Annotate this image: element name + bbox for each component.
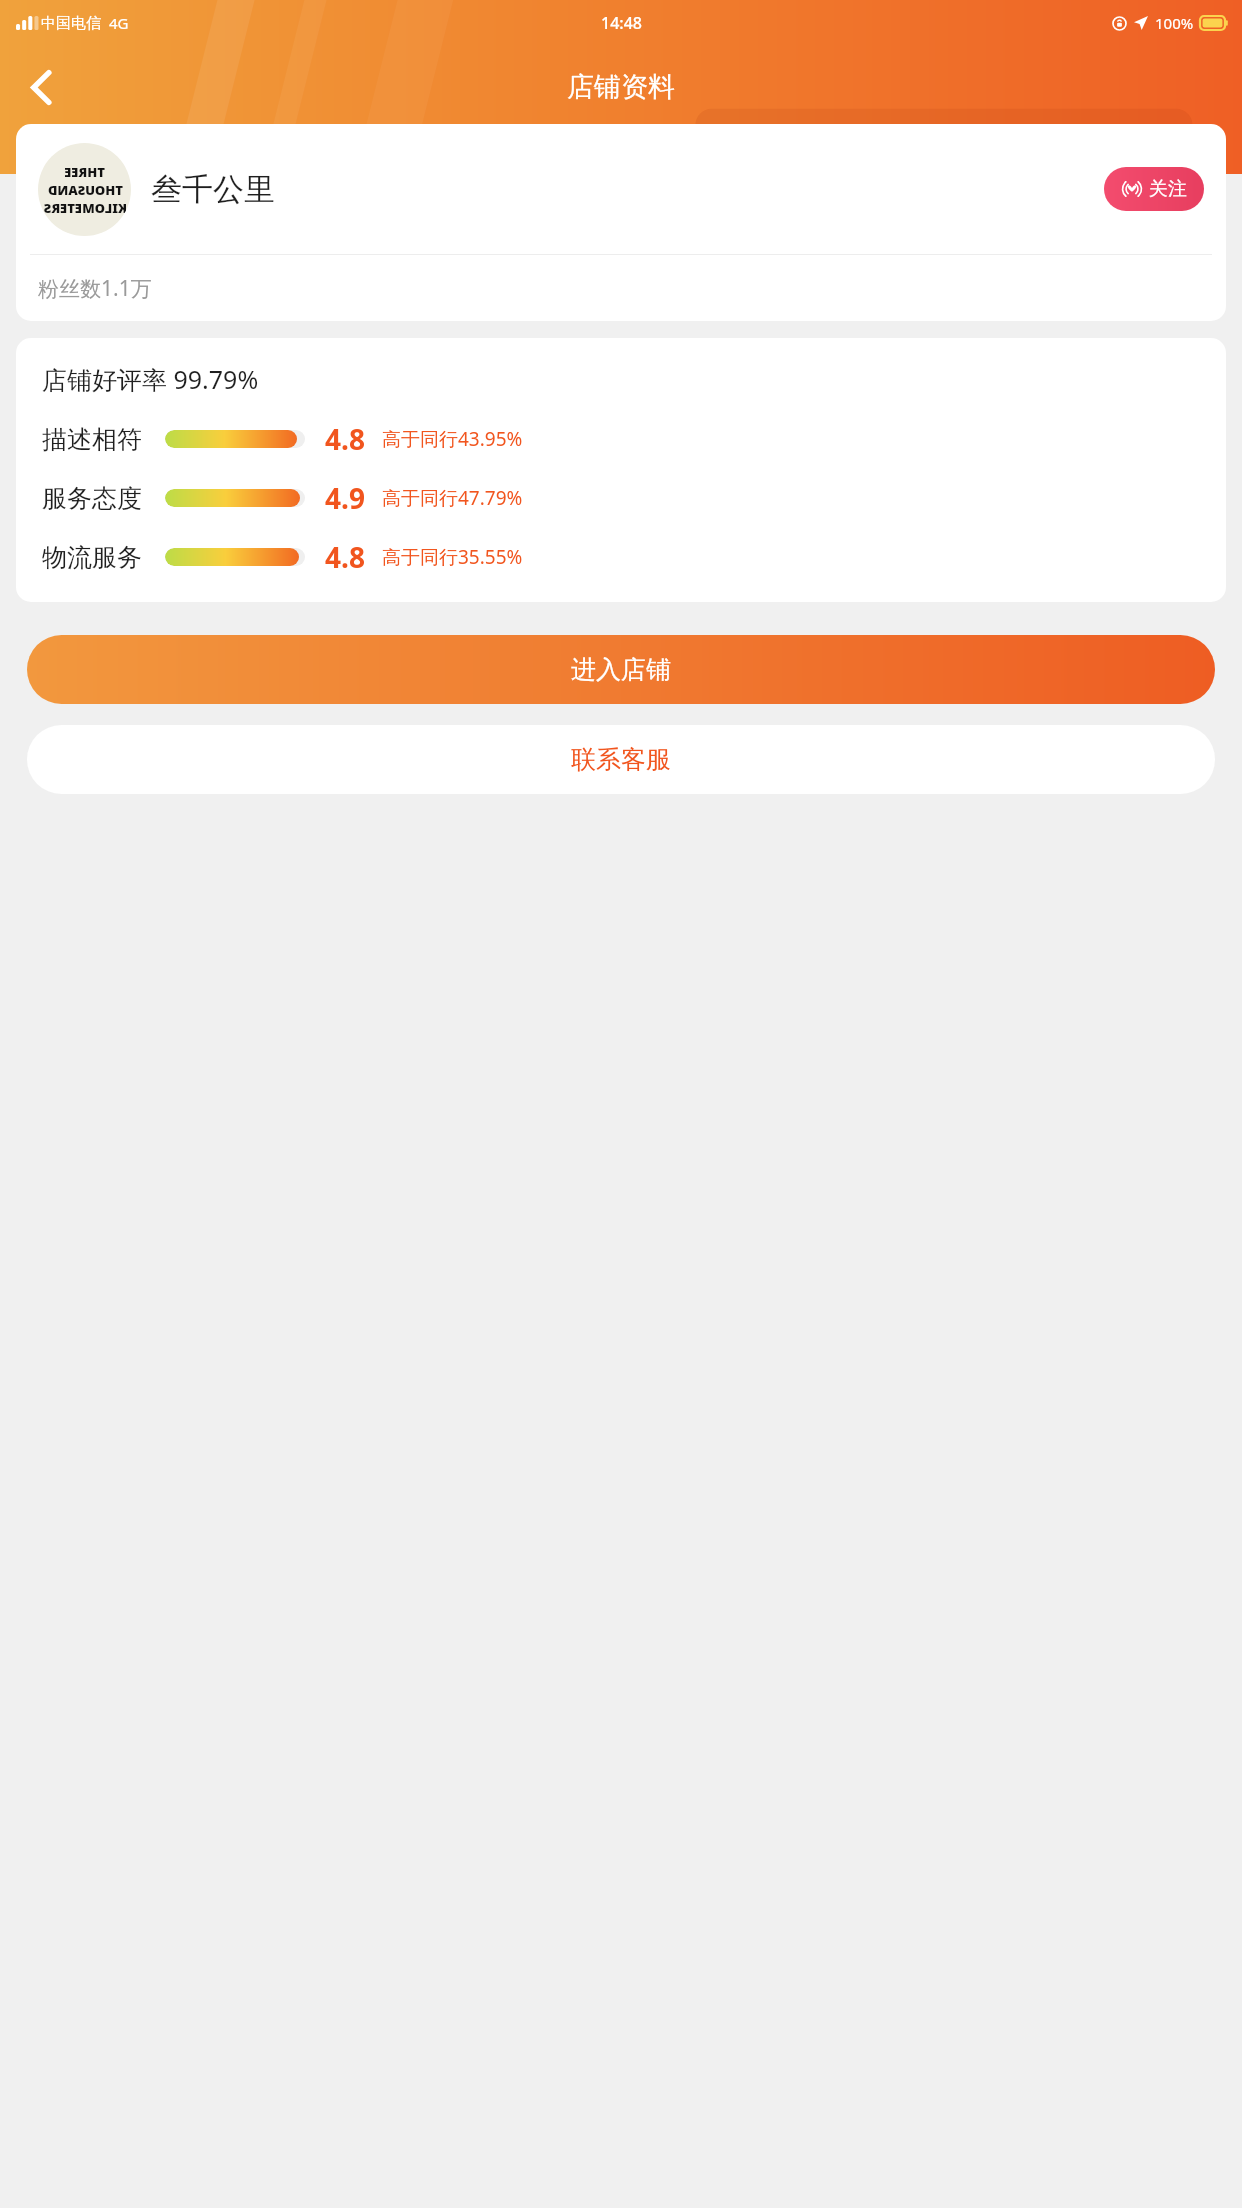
staticText: THREE bbox=[64, 163, 105, 181]
staticText: 描述相符 bbox=[42, 424, 142, 455]
staticText: 4.8 bbox=[325, 420, 365, 458]
staticText: 叁千公里 bbox=[151, 170, 1104, 209]
staticText: 100% bbox=[1155, 13, 1194, 33]
button[interactable]: THREE bbox=[16, 124, 1226, 254]
staticText: 进入店铺 bbox=[571, 654, 671, 685]
button[interactable]: Back bbox=[12, 58, 70, 116]
staticText: 4.9 bbox=[325, 479, 365, 517]
staticText: 中国电信 bbox=[41, 14, 101, 33]
staticText: KILOMETERS bbox=[43, 199, 127, 217]
button[interactable]: 关注 bbox=[1104, 167, 1204, 211]
staticText: 物流服务 bbox=[42, 542, 142, 573]
staticText: 4G bbox=[109, 13, 129, 33]
staticText: 联系客服 bbox=[571, 744, 671, 775]
staticText: 关注 bbox=[1149, 177, 1187, 201]
button[interactable]: 联系客服 bbox=[27, 725, 1215, 794]
staticText: 店铺资料 bbox=[567, 70, 675, 104]
staticText: 高于同行35.55% bbox=[382, 544, 523, 570]
staticText: 粉丝数1.1万 bbox=[38, 274, 152, 303]
button[interactable]: 粉丝数1.1万 bbox=[16, 255, 1226, 321]
staticText: 服务态度 bbox=[42, 483, 142, 514]
staticText: 高于同行43.95% bbox=[382, 426, 523, 452]
staticText: 店铺好评率 99.79% bbox=[42, 362, 259, 396]
staticText: 高于同行47.79% bbox=[382, 485, 523, 511]
button[interactable]: 进入店铺 bbox=[27, 635, 1215, 704]
staticText: 4.8 bbox=[325, 538, 365, 576]
staticText: THOUSAND bbox=[47, 181, 123, 199]
staticText: 14:48 bbox=[601, 12, 642, 34]
